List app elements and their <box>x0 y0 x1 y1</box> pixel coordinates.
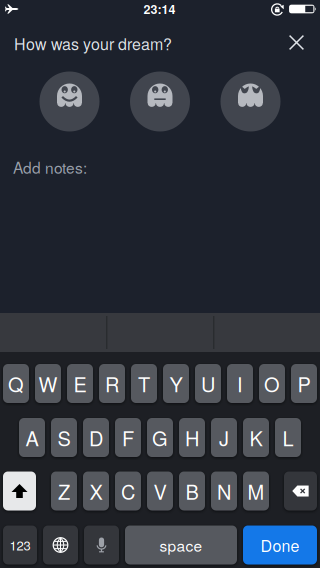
button[interactable]: I <box>227 364 253 403</box>
staticText: V <box>153 477 166 505</box>
button[interactable]: Y <box>163 364 189 403</box>
staticText: J <box>219 423 229 452</box>
button[interactable]: A <box>19 418 45 457</box>
staticText: A <box>25 423 38 452</box>
button[interactable]: S <box>51 418 77 457</box>
staticText: Q <box>8 369 24 398</box>
button[interactable]: R <box>99 364 125 403</box>
button[interactable]: V <box>147 471 173 510</box>
button[interactable]: D <box>83 418 109 457</box>
button[interactable]: Dictate <box>84 525 119 564</box>
button[interactable]: W <box>35 364 61 403</box>
button[interactable]: X <box>83 471 109 510</box>
staticText: N <box>217 477 231 505</box>
staticText: M <box>247 477 264 505</box>
staticText: 123 <box>9 536 30 554</box>
staticText: U <box>201 369 215 398</box>
button[interactable]: Done <box>243 525 317 564</box>
staticText: W <box>38 369 57 398</box>
staticText: How was your dream? <box>14 32 172 55</box>
button[interactable]: M <box>243 471 269 510</box>
staticText: X <box>89 477 102 505</box>
button[interactable]: O <box>259 364 285 403</box>
button[interactable]: U <box>195 364 221 403</box>
button[interactable]: Delete <box>284 471 317 510</box>
staticText: space <box>159 534 202 556</box>
button[interactable]: Close <box>279 25 313 59</box>
button[interactable]: H <box>179 418 205 457</box>
button[interactable]: P <box>291 364 317 403</box>
staticText: Add notes: <box>13 156 87 178</box>
button[interactable]: N <box>211 471 237 510</box>
staticText: I <box>237 369 243 398</box>
button[interactable]: Next keyboard <box>43 525 78 564</box>
button[interactable]: Q <box>3 364 29 403</box>
staticText: B <box>185 477 198 505</box>
staticText: R <box>105 369 119 398</box>
button[interactable]: T <box>131 364 157 403</box>
staticText: F <box>122 423 134 452</box>
button[interactable]: Neutral dream <box>130 71 190 131</box>
staticText: S <box>57 423 70 452</box>
button[interactable]: Shift <box>3 471 36 510</box>
staticText: Done <box>260 533 299 556</box>
staticText: K <box>249 423 262 452</box>
staticText: O <box>264 369 280 398</box>
staticText: C <box>121 477 135 505</box>
button[interactable]: Z <box>51 471 77 510</box>
button[interactable]: F <box>115 418 141 457</box>
button[interactable]: J <box>211 418 237 457</box>
button[interactable]: C <box>115 471 141 510</box>
staticText: L <box>282 423 293 452</box>
button[interactable]: E <box>67 364 93 403</box>
staticText: T <box>138 369 150 398</box>
staticText: P <box>297 369 310 398</box>
staticText: 23:14 <box>143 0 175 18</box>
button[interactable]: Good dream <box>39 71 99 131</box>
staticText: H <box>185 423 199 452</box>
button[interactable]: 123 <box>3 525 37 564</box>
staticText: G <box>152 423 168 452</box>
button[interactable]: G <box>147 418 173 457</box>
staticText: Y <box>169 369 182 398</box>
button[interactable]: space <box>125 525 237 564</box>
staticText: Z <box>58 477 70 505</box>
staticText: D <box>89 423 103 452</box>
button[interactable]: B <box>179 471 205 510</box>
staticText: E <box>73 369 86 398</box>
button[interactable]: Bad dream <box>220 71 280 131</box>
button[interactable]: K <box>243 418 269 457</box>
button[interactable]: L <box>275 418 301 457</box>
